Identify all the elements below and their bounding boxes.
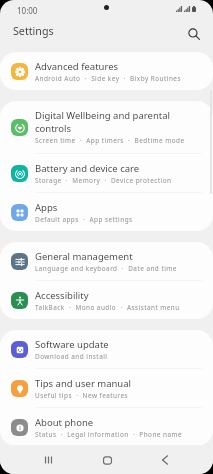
staticText: Digital Wellbeing and parental [35,109,170,122]
staticText: Storage · Memory · Device protection [35,176,172,185]
button[interactable]: Software update [0,330,213,368]
staticText: Battery and device care [35,162,140,175]
staticText: Screen time · App timers · Bedtime mode [35,136,185,145]
staticText: Useful tips · New features [35,391,129,400]
staticText: Accessibility [35,289,89,302]
staticText: Software update [35,338,109,351]
button[interactable]: General management [0,242,213,280]
staticText: TalkBack · Mono audio · Assistant menu [35,303,180,312]
button[interactable]: Digital Wellbeing and parental [0,101,213,153]
staticText: About phone [35,416,94,429]
staticText: General management [35,250,133,263]
staticText: 10:00 [17,5,38,16]
staticText: Download and install [35,352,108,361]
button[interactable]: Back [154,449,176,471]
button[interactable]: Advanced features [0,52,213,90]
button[interactable]: Apps [0,193,213,231]
staticText: controls [35,122,72,135]
staticText: Default apps · App settings [35,215,133,224]
button[interactable]: About phone [0,408,213,446]
button[interactable]: Tips and user manual [0,369,213,407]
button[interactable]: Accessibility [0,281,213,319]
staticText: Android Auto · Side key · Bixby Routines [35,74,181,83]
button[interactable]: Recents [37,449,59,471]
staticText: Advanced features [35,60,119,73]
button[interactable]: Home [96,449,118,471]
button[interactable]: Battery and device care [0,154,213,192]
staticText: Tips and user manual [35,377,132,390]
staticText: Status · Legal information · Phone name [35,430,183,439]
staticText: Apps [35,201,58,214]
staticText: Language and keyboard · Date and time [35,264,177,273]
staticText: Settings [13,24,54,39]
button[interactable]: Search [181,21,207,47]
